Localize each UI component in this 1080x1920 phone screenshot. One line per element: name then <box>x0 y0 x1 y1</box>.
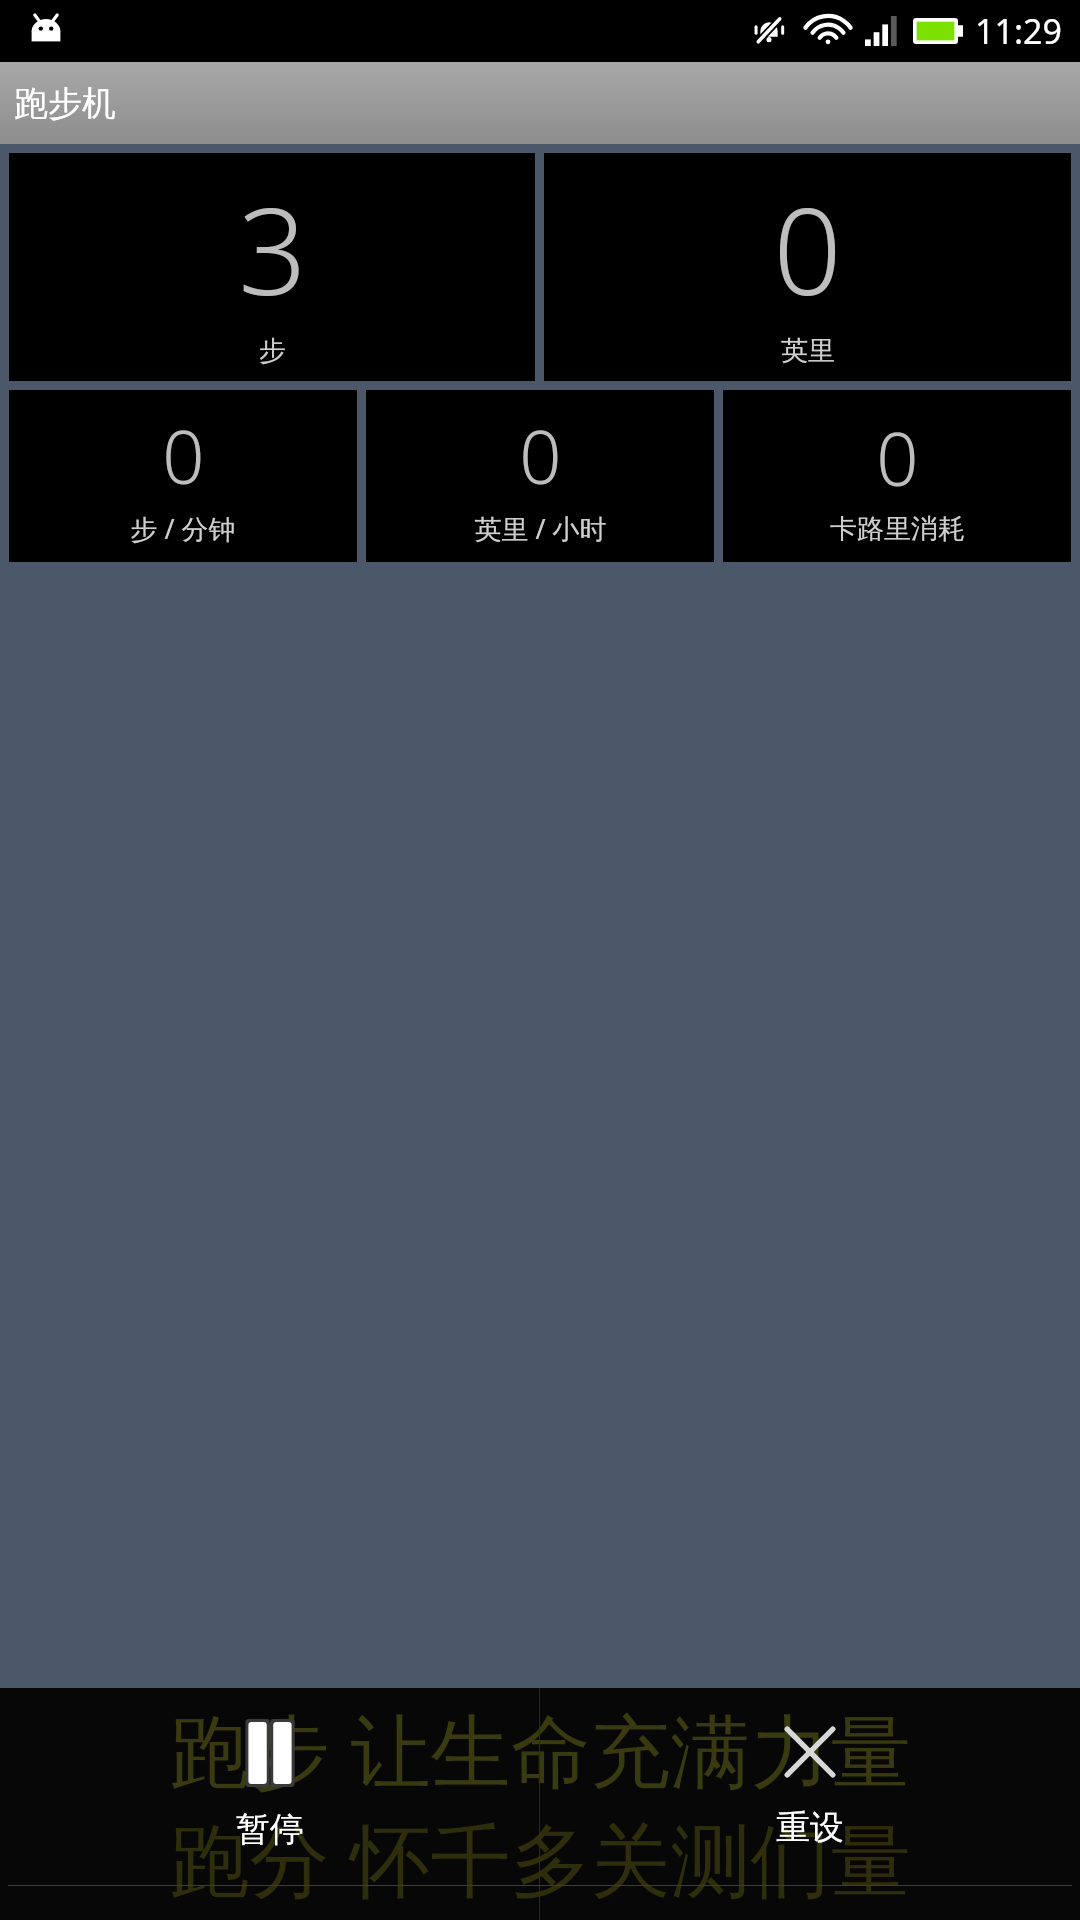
button[interactable]: 0 <box>366 390 714 562</box>
staticText: 跑步机 <box>14 82 116 125</box>
staticText: 英里 / 小时 <box>474 510 607 547</box>
staticText: 步 <box>259 334 286 368</box>
staticText: 11:29 <box>975 8 1062 54</box>
staticText: 0 <box>519 405 562 506</box>
staticText: 0 <box>773 167 842 330</box>
staticText: 暂停 <box>236 1808 304 1851</box>
staticText: 重设 <box>776 1806 844 1849</box>
staticText: 0 <box>162 405 205 506</box>
staticText: 0 <box>876 407 919 508</box>
staticText: 3 <box>238 167 307 330</box>
button[interactable]: 3 <box>9 153 535 381</box>
button[interactable]: Pause <box>0 1688 539 1920</box>
button[interactable]: 0 <box>723 390 1071 562</box>
staticText: 跑步 让生命充满力量 <box>0 1694 1080 1803</box>
button[interactable]: 0 <box>9 390 357 562</box>
staticText: 步 / 分钟 <box>130 510 236 547</box>
staticText: 卡路里消耗 <box>830 512 965 546</box>
staticText: 跑分 怀千多关测们量 <box>0 1803 1080 1912</box>
staticText: 英里 <box>781 334 835 368</box>
button[interactable]: Reset <box>540 1688 1080 1920</box>
button[interactable]: 0 <box>544 153 1071 381</box>
